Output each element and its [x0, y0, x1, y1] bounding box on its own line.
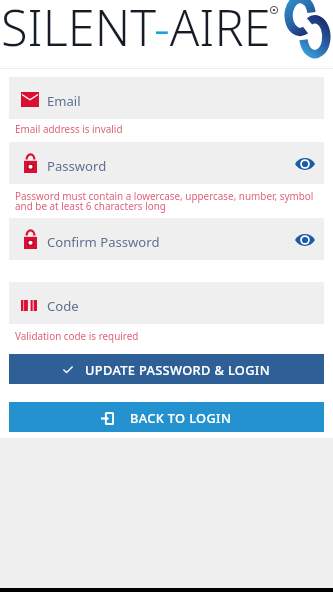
- button[interactable]: Show password: [286, 142, 324, 184]
- staticText: Confirm Password: [47, 233, 160, 251]
- staticText: Password must contain a lowercase, upper…: [15, 189, 314, 213]
- staticText: Email: [47, 92, 81, 110]
- button[interactable]: UPDATE PASSWORD & LOGIN: [9, 354, 324, 384]
- button[interactable]: Confirm Password: [9, 218, 324, 260]
- button[interactable]: Show password: [286, 218, 324, 260]
- staticText: Email address is invalid: [15, 122, 123, 135]
- button[interactable]: Password: [9, 142, 324, 184]
- button[interactable]: Code: [9, 282, 324, 324]
- staticText: Code: [47, 297, 79, 315]
- staticText: SILENT-AIRE: [1, 0, 271, 60]
- staticText: Validation code is required: [15, 329, 139, 342]
- staticText: BACK TO LOGIN: [130, 409, 232, 426]
- staticText: UPDATE PASSWORD & LOGIN: [85, 361, 271, 378]
- button[interactable]: BACK TO LOGIN: [9, 402, 324, 432]
- button[interactable]: Email: [9, 77, 324, 119]
- staticText: Password: [47, 157, 107, 175]
